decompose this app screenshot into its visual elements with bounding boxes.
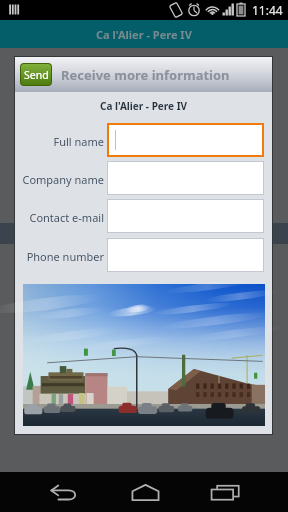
staticText: Phone number (15, 249, 104, 264)
button[interactable] (107, 199, 264, 233)
staticText: Ca l'Alier - Pere IV (96, 27, 192, 42)
button[interactable]: Back (24, 472, 104, 512)
button[interactable] (107, 161, 264, 195)
staticText: Full name (15, 134, 104, 149)
button[interactable]: Recent apps (185, 472, 265, 512)
staticText: 11:44 (252, 2, 283, 18)
button[interactable] (107, 238, 264, 272)
button[interactable]: Home (105, 472, 185, 512)
button[interactable] (107, 123, 264, 157)
staticText: Company name (15, 172, 104, 187)
staticText: Send (24, 68, 49, 82)
staticText: Contact e-mail (15, 210, 104, 225)
staticText: Ca l'Alier - Pere IV (15, 99, 272, 113)
button[interactable]: Send (21, 64, 51, 85)
staticText: Receive more information (61, 66, 230, 84)
